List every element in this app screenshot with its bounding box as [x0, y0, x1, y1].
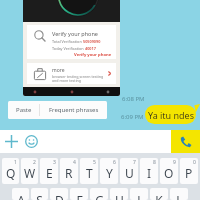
staticText: F	[76, 192, 83, 200]
staticText: Verify your phone	[52, 30, 98, 37]
staticText: 0	[193, 159, 196, 166]
button[interactable]: H	[110, 188, 128, 200]
staticText: Q	[6, 165, 16, 181]
staticText: 1	[14, 159, 17, 166]
staticText: A	[17, 192, 25, 200]
staticText: 9	[173, 159, 176, 166]
staticText: Today Verification	[52, 46, 85, 51]
staticText: 7	[133, 159, 136, 166]
staticText: Ya itu ndes	[148, 109, 194, 121]
button[interactable]: 2	[21, 158, 38, 184]
button[interactable]: Emoji	[22, 132, 41, 151]
button[interactable]: Voice call	[171, 130, 200, 153]
staticText: L	[176, 192, 183, 200]
button[interactable]: S	[31, 188, 48, 200]
staticText: Y	[106, 165, 113, 181]
staticText: G	[95, 192, 104, 200]
button[interactable]: F	[70, 188, 88, 200]
button[interactable]: Verify your phone	[27, 25, 116, 59]
staticText: more	[52, 67, 65, 74]
staticText: Total Verification	[52, 39, 83, 44]
button[interactable]: J	[130, 188, 148, 200]
staticText: J	[137, 192, 141, 200]
staticText: W	[24, 165, 36, 181]
staticText: 5	[93, 159, 96, 166]
staticText: H	[115, 192, 124, 200]
staticText: Verify your phone	[74, 52, 112, 58]
button[interactable]: 9	[160, 158, 178, 184]
button[interactable]: 8	[140, 158, 158, 184]
staticText: 40017	[85, 46, 96, 51]
button[interactable]: Add attachment	[2, 132, 21, 151]
staticText: 6:09 PM	[121, 113, 144, 121]
button[interactable]: Frequent phrases	[40, 101, 107, 119]
staticText: 6:08 PM	[122, 95, 145, 103]
staticText: U	[125, 165, 134, 181]
staticText: P	[185, 165, 193, 181]
staticText: 4	[73, 159, 76, 166]
button[interactable]: 0	[180, 158, 198, 184]
button[interactable]: G	[90, 188, 108, 200]
button[interactable]: Ya itu ndes	[145, 105, 196, 124]
staticText: 2	[33, 159, 36, 166]
staticText: 50509090	[83, 39, 101, 44]
button[interactable]: 4	[60, 158, 78, 184]
staticText: R	[65, 165, 73, 181]
button[interactable]: 6	[100, 158, 118, 184]
staticText: 3	[53, 159, 56, 166]
button[interactable]: A	[12, 188, 29, 200]
button[interactable]: more	[27, 63, 116, 84]
staticText: I	[147, 165, 152, 181]
staticText: 8	[153, 159, 156, 166]
staticText: O	[164, 165, 174, 181]
button[interactable]: 5	[80, 158, 98, 184]
staticText: Frequent phrases	[49, 106, 99, 114]
button[interactable]: L	[170, 188, 188, 200]
button[interactable]: D	[50, 188, 68, 200]
staticText: D	[55, 192, 64, 200]
button[interactable]: Paste	[8, 101, 39, 119]
staticText: K	[155, 192, 163, 200]
button[interactable]: Verify your phone	[23, 0, 120, 96]
button[interactable]: 3	[40, 158, 58, 184]
staticText: S	[36, 192, 43, 200]
button[interactable]: 7	[120, 158, 138, 184]
button[interactable]: K	[150, 188, 168, 200]
staticText: 6	[113, 159, 116, 166]
staticText: E	[46, 165, 53, 181]
staticText: T	[86, 165, 93, 181]
button[interactable]: 1	[2, 158, 19, 184]
staticText: Paste	[16, 106, 32, 114]
staticText: browser testing,screen testing	[52, 74, 104, 79]
staticText: and more testing	[52, 78, 81, 83]
